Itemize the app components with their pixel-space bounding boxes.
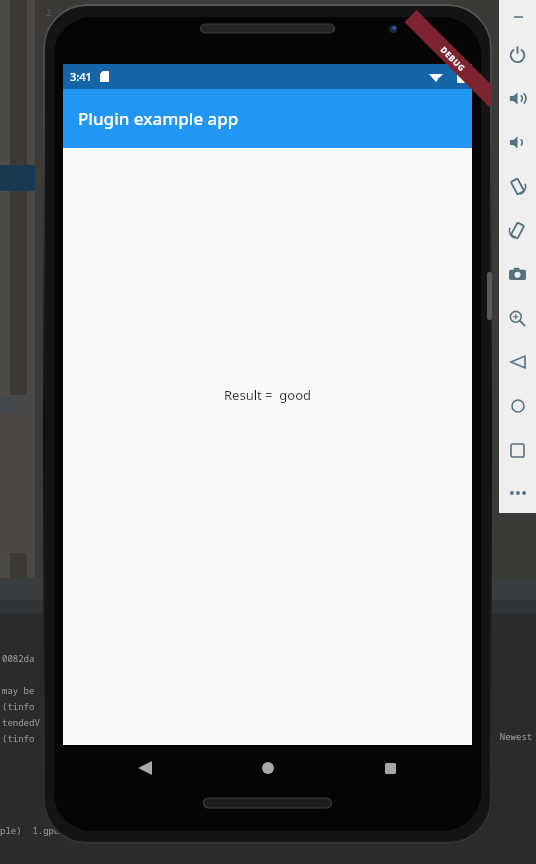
- staticText: 3: [46, 24, 52, 36]
- button[interactable]: Minimize: [505, 10, 531, 24]
- staticText: Plugin example app: [78, 107, 239, 130]
- staticText: 2: [46, 6, 52, 18]
- button[interactable]: Volume up: [499, 76, 536, 120]
- staticText: (tinfo: [2, 732, 35, 744]
- button[interactable]: Home: [248, 748, 288, 788]
- staticText: c: [488, 140, 494, 152]
- button[interactable]: Recent apps: [370, 748, 410, 788]
- staticText: tendedV: [2, 716, 40, 728]
- button[interactable]: Rotate right: [499, 208, 536, 252]
- button[interactable]: Home: [499, 384, 536, 428]
- staticText: may be: [2, 684, 35, 696]
- staticText: 0082da: [2, 652, 35, 664]
- staticText: 3:41: [70, 69, 92, 84]
- button[interactable]: Volume down: [499, 120, 536, 164]
- button[interactable]: Overview: [499, 428, 536, 472]
- button[interactable]: Zoom: [499, 296, 536, 340]
- button[interactable]: Back: [499, 340, 536, 384]
- staticText: DEBUG: [438, 44, 468, 74]
- button[interactable]: Take screenshot: [499, 252, 536, 296]
- staticText: , Newest: [489, 730, 533, 742]
- staticText: ple) 1.gpu: [0, 824, 60, 836]
- button[interactable]: Power: [499, 32, 536, 76]
- button[interactable]: More: [499, 472, 536, 513]
- staticText: (tinfo: [2, 700, 35, 712]
- staticText: Result = good: [224, 386, 312, 404]
- button[interactable]: Rotate left: [499, 164, 536, 208]
- button[interactable]: Back: [125, 748, 165, 788]
